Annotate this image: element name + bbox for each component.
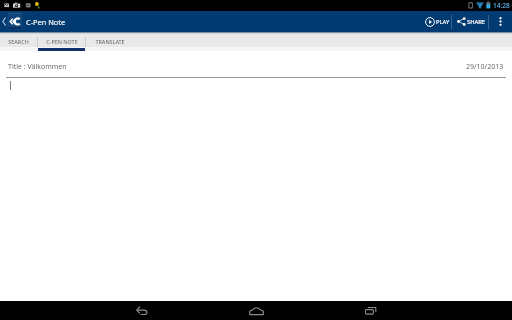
staticText: 29/10/2013	[466, 62, 504, 72]
staticText: TRANSLATE	[95, 38, 125, 45]
button[interactable]: C-Pen Note	[7, 11, 72, 32]
button[interactable]: Title : Välkommen	[0, 51, 512, 78]
staticText: 14:28	[493, 1, 510, 10]
staticText: SHARE	[467, 18, 486, 26]
button[interactable]: Back	[128, 301, 155, 320]
button[interactable]: SHARE	[452, 11, 488, 32]
button[interactable]: C-PEN NOTE	[38, 34, 85, 51]
staticText: Title : Välkommen	[8, 62, 67, 72]
staticText: SEARCH	[8, 38, 29, 45]
button[interactable]: PLAY	[421, 11, 451, 32]
button[interactable]: TRANSLATE	[86, 34, 133, 51]
button[interactable]: Home	[243, 301, 270, 320]
staticText: PLAY	[436, 18, 450, 26]
button[interactable]: Navigate up	[0, 11, 7, 32]
button[interactable]: Recent apps	[357, 301, 384, 320]
staticText: C-PEN NOTE	[46, 38, 78, 45]
button[interactable]: SEARCH	[0, 34, 37, 51]
staticText: C-Pen Note	[26, 17, 66, 27]
button[interactable]: More options	[489, 11, 512, 32]
